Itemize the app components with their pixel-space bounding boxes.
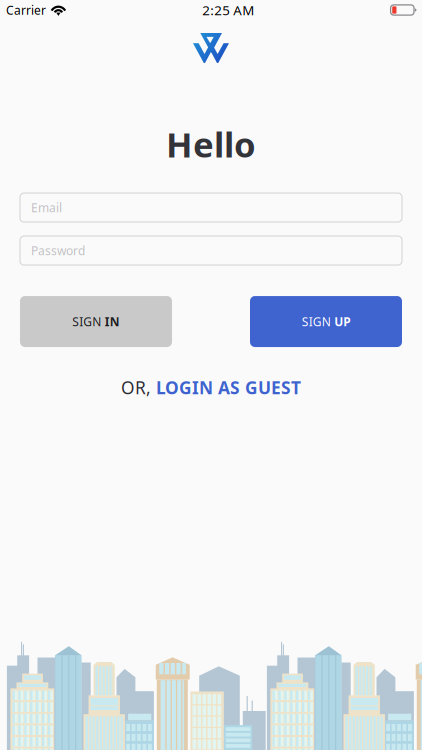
staticText: LOGIN AS GUEST (156, 376, 301, 399)
staticText: SIGN (302, 314, 331, 329)
button[interactable]: LOGIN AS GUEST (156, 376, 301, 399)
staticText: OR, (121, 376, 151, 399)
button[interactable]: SIGN (20, 296, 172, 347)
staticText: SIGN (72, 314, 101, 329)
staticText: UP (334, 314, 350, 329)
staticText: IN (105, 314, 120, 329)
staticText: Email (31, 200, 62, 215)
staticText: Hello (166, 121, 256, 167)
button[interactable]: SIGN (250, 296, 402, 347)
staticText: 2:25 AM (202, 1, 254, 19)
staticText: Carrier (6, 2, 46, 18)
staticText: Password (31, 243, 85, 258)
